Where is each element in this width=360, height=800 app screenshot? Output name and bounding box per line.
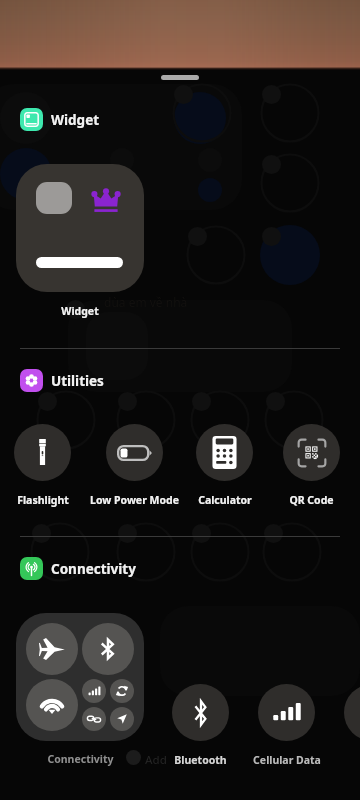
button[interactable]: Airplane Mode <box>16 613 144 741</box>
other: Bluetooth <box>190 698 212 728</box>
button[interactable]: Bluetooth <box>172 684 229 766</box>
button[interactable]: Utilities <box>20 369 104 392</box>
staticText: Connectivity <box>47 752 114 766</box>
staticText: Utilities <box>51 372 104 390</box>
other: Low Power Mode <box>117 444 153 462</box>
button[interactable]: Low Power Mode <box>106 424 163 506</box>
staticText: Low Power Mode <box>90 493 179 507</box>
button[interactable]: Flashlight <box>14 424 71 506</box>
staticText: QR Code <box>289 493 334 507</box>
other: Flashlight <box>36 438 49 467</box>
staticText: Cellular Data <box>253 753 321 767</box>
button[interactable] <box>16 164 144 292</box>
button[interactable]: Calculator <box>196 424 253 506</box>
other: Airplane Mode <box>39 636 65 662</box>
other: Personal Hotspot <box>87 712 101 726</box>
staticText: Flashlight <box>17 493 69 507</box>
other: VPN <box>116 713 128 725</box>
button[interactable]: Connectivity <box>20 557 136 580</box>
staticText: Bluetooth <box>174 753 227 767</box>
other: Cellular Data <box>272 700 302 726</box>
button[interactable]: QR Code <box>283 424 340 506</box>
staticText: Widget <box>61 304 99 318</box>
other: QR Code <box>297 438 327 468</box>
staticText: Calculator <box>198 493 252 507</box>
other: Wi-Fi <box>39 692 65 718</box>
button[interactable]: Cellular Data <box>258 684 315 766</box>
button[interactable]: VPN <box>344 684 360 766</box>
button[interactable]: Widget <box>20 108 100 131</box>
other: Calculator <box>208 436 241 469</box>
staticText: Widget <box>51 111 100 129</box>
staticText: Connectivity <box>51 560 136 578</box>
other: Sync <box>115 684 129 698</box>
other: Bluetooth <box>96 637 120 661</box>
staticText: Add <box>145 752 167 768</box>
other: Cellular Data <box>88 685 101 698</box>
